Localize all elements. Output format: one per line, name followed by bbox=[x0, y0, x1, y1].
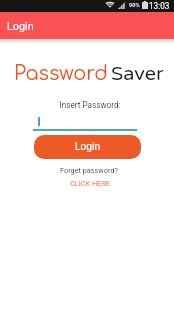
button[interactable]: Login bbox=[34, 135, 141, 159]
staticText: 13:03 bbox=[149, 1, 170, 11]
staticText: Saver bbox=[111, 62, 164, 86]
staticText: Insert Password: bbox=[3, 100, 174, 110]
other: Wi-Fi signal bbox=[105, 1, 115, 8]
staticText: 90% bbox=[129, 2, 140, 9]
other: Cellular signal bbox=[118, 2, 125, 9]
staticText: Forget password? bbox=[2, 166, 174, 175]
other: Battery 90 percent bbox=[142, 1, 148, 9]
staticText: CLICK HERE bbox=[70, 179, 110, 188]
button[interactable]: Password input field bbox=[33, 117, 137, 131]
staticText: Login bbox=[7, 20, 34, 33]
staticText: Login bbox=[75, 141, 101, 153]
staticText: Password bbox=[14, 63, 108, 85]
button[interactable]: CLICK HERE bbox=[69, 179, 111, 188]
